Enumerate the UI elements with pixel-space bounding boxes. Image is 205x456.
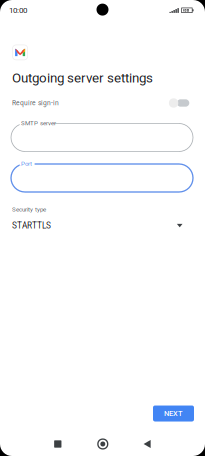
staticText: SMTP server [21, 119, 56, 127]
staticText: 10:00 [9, 6, 27, 15]
button[interactable]: Home [90, 434, 116, 454]
button[interactable]: Require sign-in [171, 98, 187, 108]
staticText: STARTTLS [12, 221, 51, 230]
button[interactable]: Back [134, 434, 160, 454]
button[interactable]: STARTTLS [12, 218, 194, 234]
staticText: Port [21, 160, 32, 167]
staticText: Outgoing server settings [12, 70, 153, 86]
button[interactable]: NEXT [153, 405, 194, 421]
staticText: Require sign-in [12, 99, 59, 107]
button[interactable]: Port [11, 160, 193, 192]
staticText: NEXT [164, 409, 183, 418]
button[interactable]: SMTP server [11, 119, 193, 151]
button[interactable]: Recent apps [45, 434, 71, 454]
staticText: Security type [12, 206, 46, 213]
